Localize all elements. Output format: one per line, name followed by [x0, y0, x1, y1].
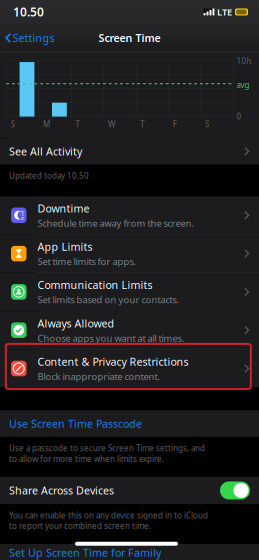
- staticText: Set Up Screen Time for Family: [9, 545, 161, 560]
- button[interactable]: Communication Limits: [0, 273, 259, 311]
- button[interactable]: Share Across Devices: [220, 481, 250, 499]
- staticText: Use a passcode to secure Screen Time set…: [9, 443, 205, 464]
- staticText: Set time limits for apps.: [37, 255, 136, 268]
- staticText: Screen Time: [98, 31, 160, 45]
- button[interactable]: Set Up Screen Time for Family: [0, 544, 259, 560]
- staticText: Content & Privacy Restrictions: [37, 354, 188, 369]
- button[interactable]: See All Activity: [0, 138, 259, 164]
- staticText: T: [75, 119, 79, 129]
- staticText: T: [140, 119, 144, 129]
- staticText: Updated today 10.50: [9, 170, 89, 181]
- staticText: Downtime: [37, 201, 89, 215]
- staticText: Choose apps you want at all times.: [37, 332, 184, 344]
- staticText: 10h: [236, 56, 251, 66]
- staticText: Use Screen Time Passcode: [9, 416, 142, 431]
- staticText: Block inappropriate content.: [37, 370, 160, 382]
- staticText: Communication Limits: [37, 278, 152, 292]
- staticText: S: [205, 119, 209, 129]
- staticText: avg: [236, 80, 249, 90]
- staticText: Schedule time away from the screen.: [37, 217, 194, 229]
- staticText: F: [173, 119, 177, 129]
- button[interactable]: Content & Privacy Restrictions: [0, 350, 259, 387]
- staticText: 10.50: [13, 4, 44, 20]
- staticText: See All Activity: [9, 144, 82, 158]
- button[interactable]: Downtime: [0, 196, 259, 234]
- staticText: LTE: [217, 6, 232, 18]
- staticText: Share Across Devices: [9, 483, 114, 498]
- staticText: S: [11, 119, 15, 129]
- button[interactable]: Use Screen Time Passcode: [0, 410, 259, 437]
- button[interactable]: Settings: [0, 26, 58, 50]
- staticText: Always Allowed: [37, 316, 114, 330]
- staticText: Settings: [12, 31, 54, 45]
- staticText: W: [108, 119, 115, 129]
- staticText: Set limits based on your contacts.: [37, 293, 179, 306]
- button[interactable]: App Limits: [0, 235, 259, 272]
- button[interactable]: Always Allowed: [0, 311, 259, 349]
- staticText: App Limits: [37, 240, 92, 254]
- staticText: 0: [236, 111, 241, 122]
- staticText: You can enable this on any device signed…: [9, 510, 208, 531]
- staticText: M: [43, 119, 50, 129]
